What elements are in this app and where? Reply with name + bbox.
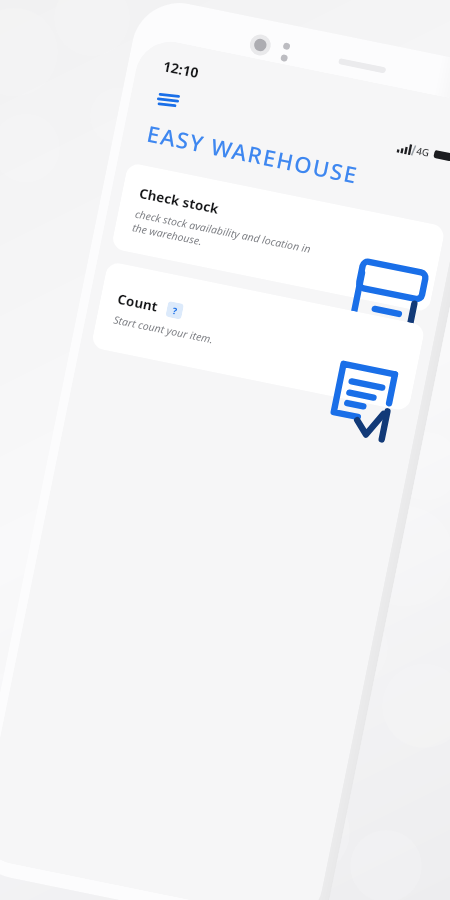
staticText: Start count your item. bbox=[112, 312, 215, 346]
staticText: ? bbox=[171, 304, 179, 317]
staticText: check stock availability and location in… bbox=[131, 207, 322, 272]
staticText: Check stock bbox=[138, 184, 221, 218]
staticText: 12:10 bbox=[161, 56, 200, 82]
button[interactable]: Help bbox=[165, 301, 184, 320]
staticText: EASY WAREHOUSE bbox=[145, 118, 361, 190]
staticText: Count bbox=[116, 290, 160, 316]
staticText: 4G bbox=[415, 143, 431, 160]
button[interactable]: Open navigation menu bbox=[147, 80, 188, 120]
button[interactable]: Count bbox=[91, 261, 426, 412]
button[interactable]: Check stock bbox=[111, 162, 446, 313]
